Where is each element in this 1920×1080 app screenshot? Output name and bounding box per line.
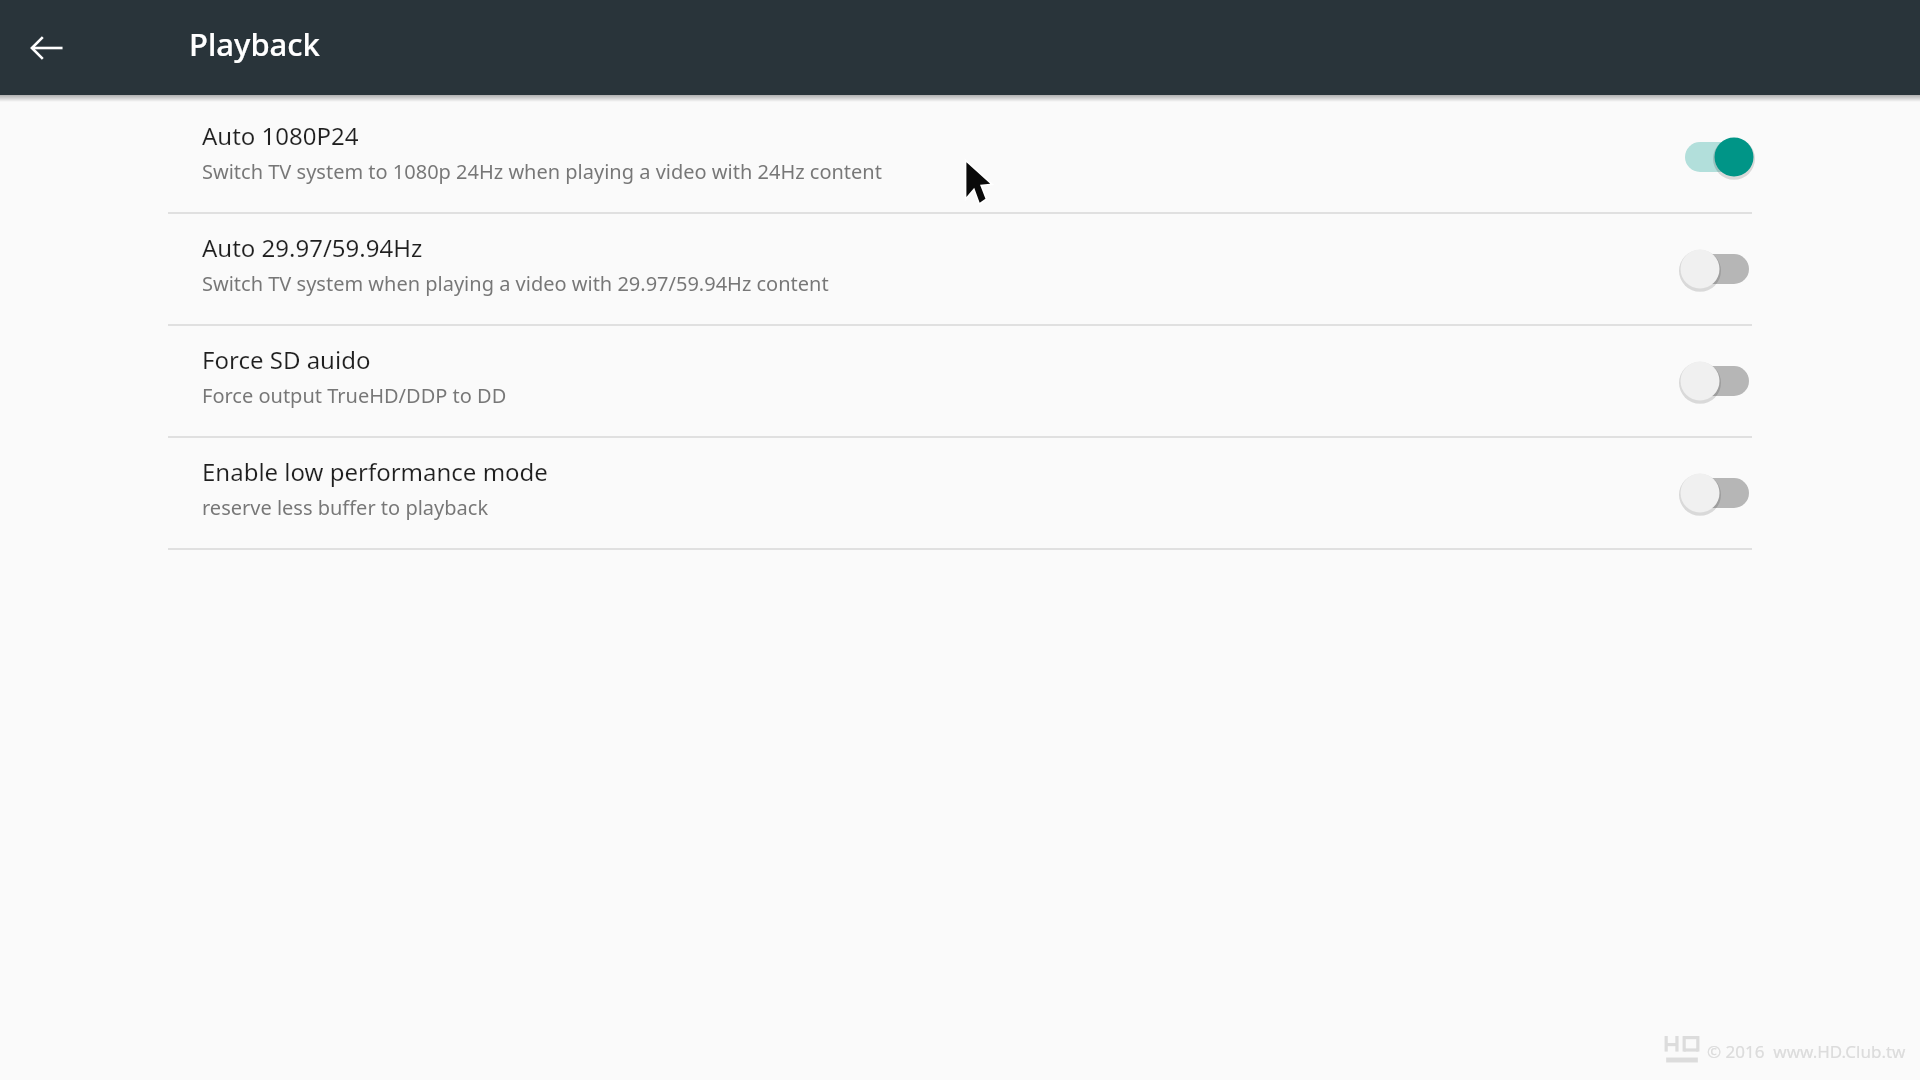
button[interactable]: On <box>1674 132 1760 182</box>
button[interactable]: Auto 1080P24 <box>0 102 1920 214</box>
staticText: Auto 1080P24 <box>202 119 359 152</box>
staticText: Switch TV system when playing a video wi… <box>202 270 829 297</box>
button[interactable]: Off <box>1674 468 1760 518</box>
button[interactable]: Force SD auido <box>0 326 1920 438</box>
staticText: Playback <box>189 23 320 65</box>
button[interactable]: Enable low performance mode <box>0 438 1920 550</box>
staticText: reserve less buffer to playback <box>202 494 489 521</box>
staticText: Switch TV system to 1080p 24Hz when play… <box>202 158 882 185</box>
button[interactable]: Back <box>26 27 68 69</box>
button[interactable]: Off <box>1674 356 1760 406</box>
staticText: Auto 29.97/59.94Hz <box>202 231 423 264</box>
staticText: Enable low performance mode <box>202 455 548 488</box>
button[interactable]: Off <box>1674 244 1760 294</box>
staticText: © 2016 www.HD.Club.tw <box>1707 1040 1906 1063</box>
button[interactable]: Auto 29.97/59.94Hz <box>0 214 1920 326</box>
staticText: Force SD auido <box>202 343 371 376</box>
staticText: Force output TrueHD/DDP to DD <box>202 382 507 409</box>
